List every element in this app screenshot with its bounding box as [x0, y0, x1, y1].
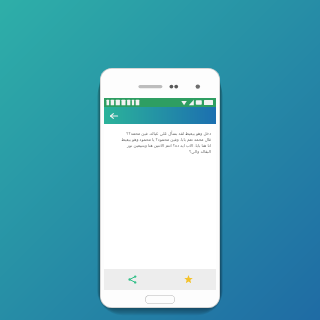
staticText: دخل وهو بيعيط لقد بسأل علي عياله. فين مح…: [109, 131, 211, 137]
staticText: انا هنا بابا. الاب ايه ده؟ انتم الاثنين …: [109, 143, 211, 149]
button[interactable]: Back: [108, 110, 120, 122]
staticText: قال محمد نعم بابا. وفين محمود؟ يا محمود …: [109, 137, 211, 143]
button[interactable]: Home: [145, 295, 175, 304]
button[interactable]: Favorite: [160, 269, 216, 290]
button[interactable]: Share: [104, 269, 160, 290]
staticText: البقالة والي؟: [109, 149, 211, 155]
